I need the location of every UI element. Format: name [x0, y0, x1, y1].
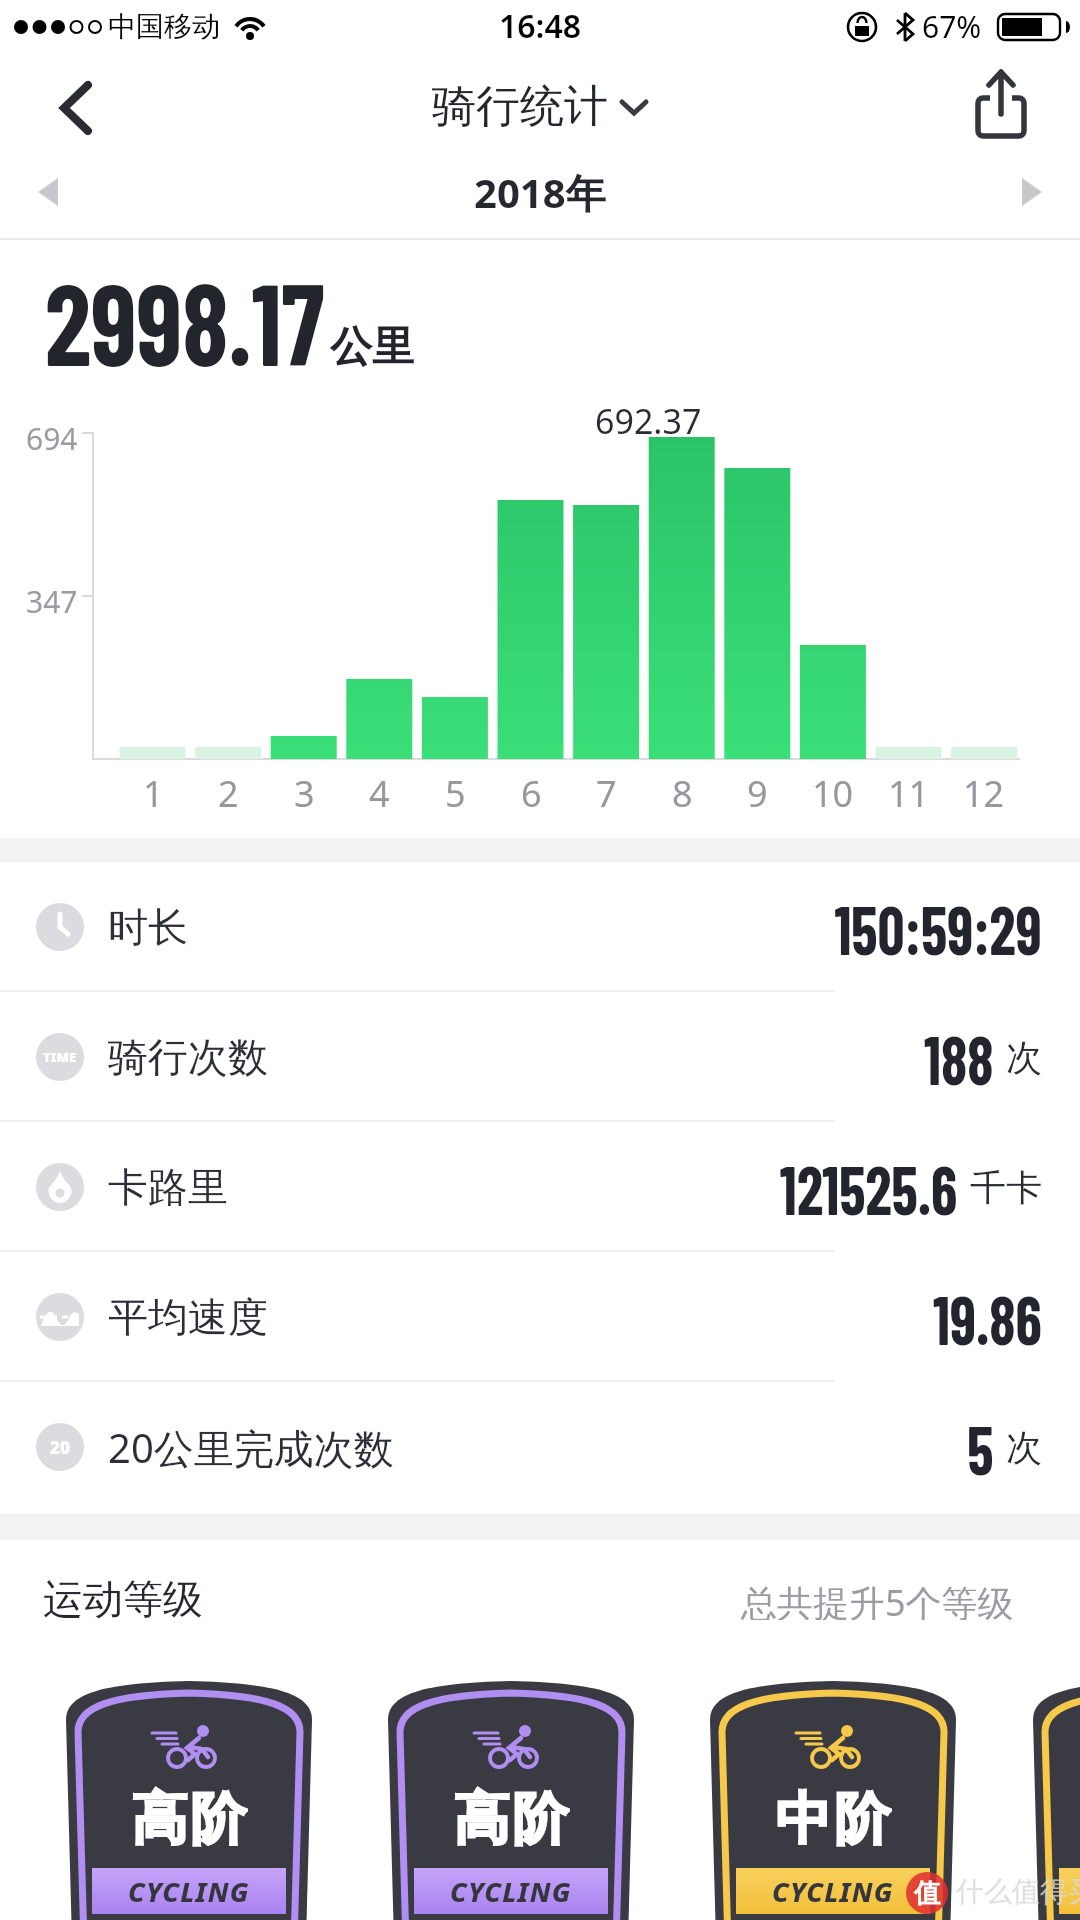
staticText: 公里	[330, 321, 414, 373]
staticText: 9	[747, 769, 768, 811]
staticText: 188	[924, 1016, 994, 1099]
staticText: 1	[143, 769, 164, 811]
staticText: 8	[672, 769, 693, 811]
staticText: 692.37	[595, 398, 702, 436]
staticText: 7	[596, 769, 617, 811]
staticText: 5	[967, 1406, 994, 1489]
staticText: 67%	[922, 6, 982, 47]
staticText: 5	[445, 769, 466, 811]
staticText: 值	[914, 1877, 940, 1910]
staticText: 20	[50, 1436, 70, 1459]
button[interactable]: 骑行统计	[432, 79, 648, 134]
staticText: 次	[1006, 1425, 1042, 1470]
staticText: 11	[888, 769, 930, 811]
staticText: TIME	[43, 1048, 77, 1066]
staticText: 中国移动	[108, 9, 220, 44]
staticText: 什么值得买	[956, 1874, 1080, 1909]
staticText: 347	[26, 581, 78, 613]
staticText: 4	[369, 769, 390, 811]
staticText: 次	[1006, 1035, 1042, 1080]
button[interactable]: 时长	[0, 862, 1080, 992]
staticText: 时长	[108, 902, 188, 952]
staticText: 3	[294, 769, 315, 811]
button[interactable]: TIME	[0, 992, 1080, 1122]
button[interactable]: 中阶	[708, 1680, 958, 1920]
staticText: 平均速度	[108, 1292, 268, 1342]
staticText: 高阶	[130, 1784, 248, 1848]
staticText: 19.86	[933, 1276, 1042, 1359]
staticText: 694	[26, 418, 78, 450]
button[interactable]	[40, 70, 112, 146]
staticText: CYCLING	[772, 1873, 894, 1910]
button[interactable]: 平均速度	[0, 1252, 1080, 1382]
staticText: 运动等级	[43, 1574, 203, 1620]
staticText: 6	[521, 769, 542, 811]
staticText: 骑行统计	[432, 79, 608, 134]
button[interactable]: 高阶	[386, 1680, 636, 1920]
button[interactable]	[20, 160, 80, 224]
staticText: 总共提升5个等级	[741, 1578, 1014, 1620]
staticText: CYCLING	[450, 1873, 572, 1910]
button[interactable]	[966, 62, 1046, 146]
staticText: 12	[963, 769, 1005, 811]
staticText: CYCLING	[128, 1873, 250, 1910]
staticText: 千卡	[970, 1165, 1042, 1210]
staticText: 121525.6	[780, 1146, 958, 1229]
staticText: 16:48	[499, 4, 582, 48]
staticText: 2	[218, 769, 239, 811]
staticText: 2998.17	[45, 252, 325, 372]
staticText: 骑行次数	[108, 1032, 268, 1082]
staticText: 20公里完成次数	[108, 1420, 394, 1475]
staticText: 150:59:29	[834, 886, 1042, 969]
button[interactable]: 中阶	[1031, 1680, 1080, 1920]
button[interactable]: 20	[0, 1382, 1080, 1512]
staticText: 2018年	[474, 165, 606, 220]
staticText: 中阶	[774, 1784, 892, 1848]
button[interactable]	[1000, 160, 1060, 224]
staticText: 10	[812, 769, 854, 811]
button[interactable]: 卡路里	[0, 1122, 1080, 1252]
staticText: 高阶	[452, 1784, 570, 1848]
staticText: 卡路里	[108, 1162, 228, 1212]
button[interactable]: 高阶	[64, 1680, 314, 1920]
